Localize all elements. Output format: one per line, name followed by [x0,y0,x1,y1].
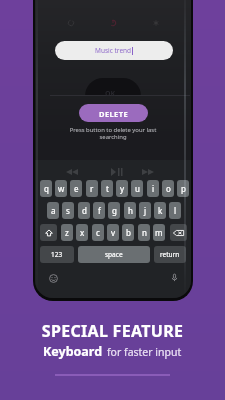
button[interactable]: i [147,180,159,197]
button[interactable]: b [122,224,134,241]
staticText: OK [105,89,116,99]
staticText: v [111,227,116,238]
button[interactable]: q [40,180,52,197]
button[interactable]: z [61,224,73,241]
staticText: s [66,205,70,216]
staticText: h [128,205,133,216]
staticText: Music trend [95,46,132,55]
staticText: l [174,205,177,216]
button[interactable]: w [55,180,67,197]
button[interactable]: Backspace [170,224,187,241]
button[interactable]: t [101,180,113,197]
staticText: d [82,205,87,216]
button[interactable]: Power [109,19,117,27]
staticText: y [120,183,125,194]
staticText: Keyboard [43,343,103,360]
button[interactable]: s [62,202,74,219]
button[interactable]: space [78,246,150,263]
staticText: i [152,183,155,194]
button[interactable]: c [92,224,104,241]
button[interactable]: Effects [152,19,160,27]
staticText: DELETE [99,109,129,119]
button[interactable]: j [139,202,151,219]
button[interactable]: e [70,180,82,197]
button[interactable]: h [124,202,136,219]
staticText: for faster input [107,345,182,359]
button[interactable]: m [153,224,165,241]
staticText: r [90,183,94,194]
staticText: space [105,250,123,259]
button[interactable]: Search [67,19,75,27]
button[interactable]: DELETE [79,104,148,122]
staticText: e [74,183,79,194]
staticText: b [126,227,131,238]
staticText: q [44,183,49,194]
staticText: x [80,227,85,238]
button[interactable]: Emoji keyboard [49,274,58,283]
button[interactable]: v [107,224,119,241]
staticText: Press button to delete your last searchi… [35,126,191,141]
staticText: m [155,227,163,238]
staticText: a [51,205,56,216]
button[interactable]: p [177,180,189,197]
staticText: SPECIAL FEATURE [0,320,225,342]
button[interactable]: k [154,202,166,219]
button[interactable]: l [169,202,181,219]
button[interactable]: y [116,180,128,197]
button[interactable]: g [108,202,120,219]
staticText: k [158,205,163,216]
button[interactable]: 123 [40,246,74,263]
staticText: n [142,227,147,238]
staticText: j [144,205,147,216]
button[interactable]: u [131,180,143,197]
staticText: 123 [51,250,63,259]
button[interactable]: r [86,180,98,197]
button[interactable]: o [162,180,174,197]
button[interactable]: n [138,224,150,241]
button[interactable]: Voice input [170,273,179,282]
button[interactable]: x [76,224,88,241]
staticText: u [135,183,140,194]
button[interactable]: Music trend [55,41,173,60]
button[interactable]: f [93,202,105,219]
staticText: c [96,227,100,238]
staticText: p [181,183,186,194]
button[interactable]: return [154,246,186,263]
button[interactable]: a [47,202,59,219]
staticText: o [166,183,171,194]
button[interactable]: d [78,202,90,219]
staticText: return [160,250,180,259]
staticText: f [98,205,101,216]
staticText: t [106,183,109,194]
button[interactable]: Shift [40,224,57,241]
staticText: g [112,205,117,216]
staticText: z [65,227,69,238]
staticText: w [58,183,65,194]
